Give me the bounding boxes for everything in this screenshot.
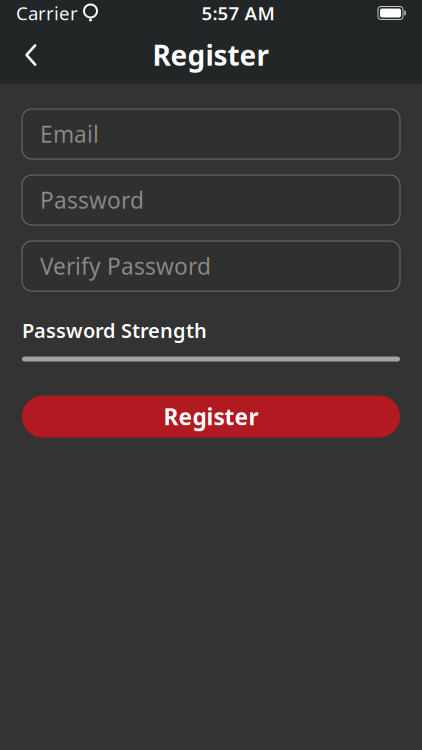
staticText: Email <box>40 119 99 149</box>
button[interactable]: Register <box>22 396 400 438</box>
staticText: Password Strength <box>22 317 207 344</box>
staticText: Register <box>163 401 258 432</box>
staticText: Password <box>40 185 144 215</box>
button[interactable]: Back <box>9 33 53 77</box>
staticText: Verify Password <box>40 251 211 281</box>
staticText: Register <box>152 36 269 74</box>
staticText: Carrier <box>16 1 78 25</box>
staticText: 5:57 AM <box>201 1 274 25</box>
